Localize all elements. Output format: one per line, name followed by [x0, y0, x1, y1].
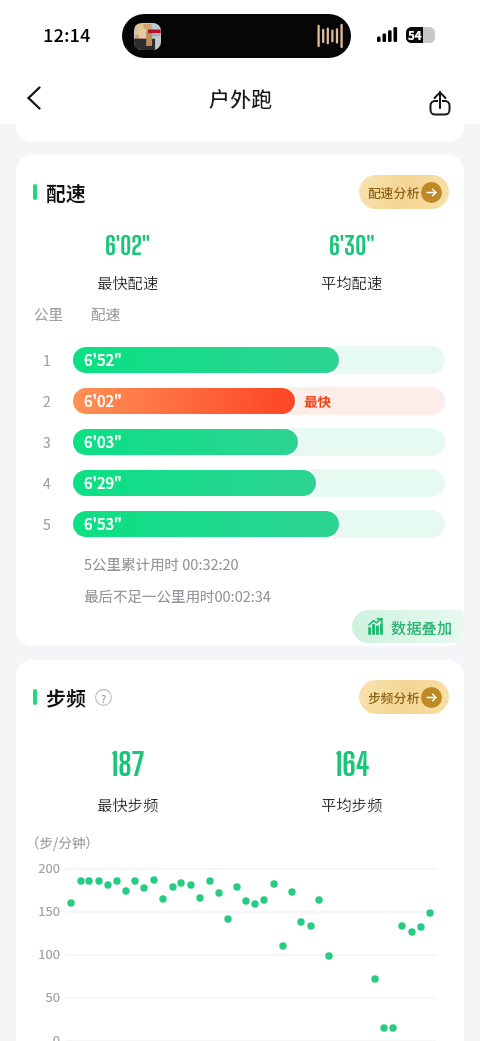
staticText: 6'03"	[84, 431, 122, 453]
staticText: 187	[111, 745, 145, 782]
staticText: （步/分钟）	[26, 832, 99, 852]
staticText: 户外跑	[209, 83, 272, 113]
button[interactable]: Share	[422, 80, 458, 116]
staticText: ?	[101, 690, 107, 706]
staticText: 步频	[46, 683, 86, 712]
staticText: 平均步频	[321, 793, 383, 815]
button[interactable]: 配速分析	[359, 175, 449, 209]
staticText: 0	[26, 1030, 60, 1041]
button[interactable]: Back	[16, 80, 52, 116]
staticText: 5公里累计用时 00:32:20	[84, 553, 239, 574]
staticText: 6'02"	[84, 390, 122, 412]
staticText: 5	[43, 514, 51, 534]
staticText: 最快配速	[97, 271, 159, 293]
staticText: 6'30"	[329, 230, 375, 260]
staticText: 6'02"	[105, 230, 151, 260]
staticText: 配速	[91, 303, 121, 324]
button[interactable]: 数据叠加	[352, 610, 464, 643]
button[interactable]: 步频分析	[359, 680, 449, 714]
staticText: 6'29"	[84, 472, 122, 494]
staticText: 6'52"	[84, 349, 122, 371]
staticText: 1	[43, 350, 51, 370]
staticText: 12:14	[43, 21, 91, 47]
staticText: 配速	[46, 178, 86, 207]
staticText: 6'53"	[84, 513, 122, 535]
staticText: 2	[43, 391, 51, 411]
staticText: 100	[26, 944, 60, 963]
staticText: 数据叠加	[391, 616, 453, 638]
staticText: 150	[26, 901, 60, 920]
staticText: 最快	[304, 391, 331, 411]
staticText: 平均配速	[321, 271, 383, 293]
staticText: 公里	[34, 303, 64, 324]
staticText: 4	[43, 473, 51, 493]
staticText: 200	[26, 858, 60, 877]
staticText: 3	[43, 432, 51, 452]
staticText: 配速分析	[368, 183, 420, 202]
staticText: 最后不足一公里用时00:02:34	[84, 585, 271, 606]
staticText: 50	[26, 987, 60, 1006]
staticText: 步频分析	[368, 688, 420, 707]
staticText: 54	[408, 27, 422, 43]
staticText: 164	[335, 745, 370, 782]
staticText: 最快步频	[97, 793, 159, 815]
